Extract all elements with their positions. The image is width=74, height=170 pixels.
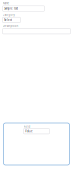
staticText: Description [2,24,18,28]
staticText: Name [2,1,9,5]
staticText: Select [4,18,12,22]
staticText: Category [2,13,14,16]
staticText: Field [23,125,30,128]
staticText: Value [25,129,33,133]
staticText: Sample text [4,7,18,10]
